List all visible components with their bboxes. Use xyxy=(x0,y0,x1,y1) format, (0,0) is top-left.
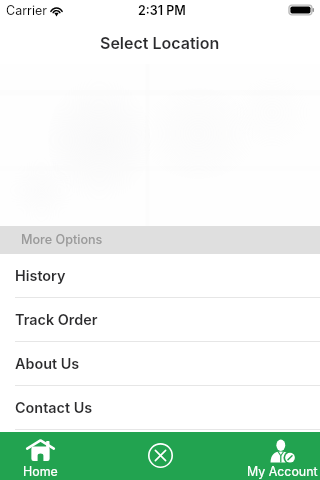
staticText: Carrier xyxy=(6,3,47,18)
staticText: Contact Us xyxy=(15,399,93,416)
staticText: My Account xyxy=(247,464,318,479)
staticText: Home xyxy=(23,464,58,479)
staticText: History xyxy=(15,267,66,284)
button[interactable]: Track Order xyxy=(0,298,320,342)
staticText: 2:31 PM xyxy=(138,3,186,18)
staticText: Select Location xyxy=(100,33,220,52)
staticText: Track Order xyxy=(15,311,98,328)
button[interactable]: About Us xyxy=(0,342,320,386)
button[interactable]: Contact Us xyxy=(0,386,320,430)
button[interactable]: Close xyxy=(120,432,200,480)
button[interactable]: Home xyxy=(0,432,80,480)
staticText: More Options xyxy=(21,232,103,247)
button[interactable]: History xyxy=(0,254,320,298)
button[interactable]: My Account xyxy=(244,432,320,480)
staticText: About Us xyxy=(15,355,80,372)
